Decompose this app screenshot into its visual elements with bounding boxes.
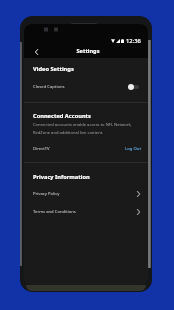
- staticText: Privacy Information: [33, 173, 90, 181]
- staticText: 12:36: [126, 37, 141, 45]
- button[interactable]: Closed Captions: [24, 79, 148, 94]
- button[interactable]: Terms and Conditions: [24, 204, 148, 220]
- staticText: Terms and Conditions: [33, 209, 76, 215]
- staticText: Closed Captions: [33, 84, 65, 90]
- button[interactable]: DirectTV: [24, 142, 148, 156]
- button[interactable]: Privacy Policy: [24, 186, 148, 202]
- staticText: Connected Accounts: [33, 112, 91, 120]
- staticText: Log Out: [125, 146, 141, 152]
- staticText: Settings: [26, 47, 148, 55]
- staticText: DirectTV: [33, 146, 50, 152]
- staticText: Privacy Policy: [33, 191, 60, 197]
- staticText: Connected accounts enable access to NFL …: [33, 122, 132, 136]
- staticText: Video Settings: [33, 65, 74, 73]
- button[interactable]: Back: [30, 45, 43, 58]
